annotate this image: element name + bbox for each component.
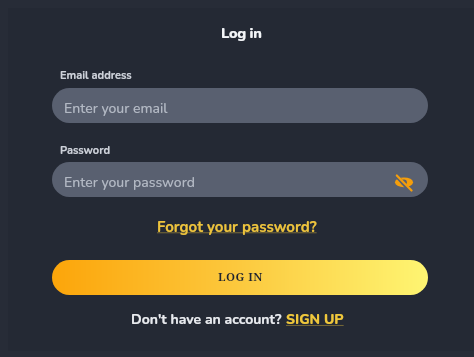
staticText: LOG IN [218, 269, 263, 285]
staticText: Forgot your password? [157, 217, 317, 237]
staticText: Log in [221, 23, 262, 43]
staticText: Password [60, 143, 110, 158]
staticText: Enter your password [64, 173, 195, 192]
staticText: SIGN UP [286, 310, 344, 329]
staticText: Enter your email [64, 99, 168, 118]
staticText: Email address [60, 68, 132, 83]
staticText: Don't have an account? [131, 310, 286, 329]
